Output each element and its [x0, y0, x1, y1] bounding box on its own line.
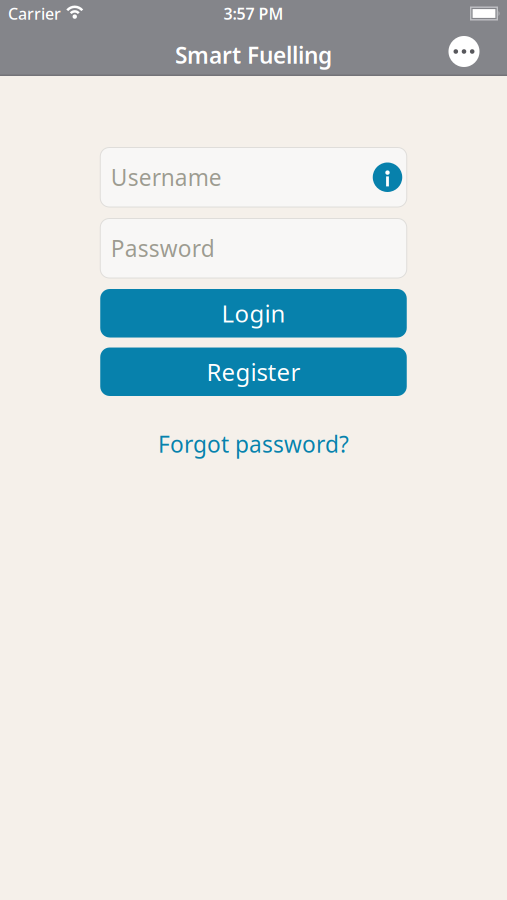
staticText: Smart Fuelling [175, 40, 332, 70]
button[interactable]: Register [100, 347, 407, 396]
button[interactable]: More options [448, 36, 479, 67]
staticText: Register [206, 356, 300, 388]
staticText: Username [111, 162, 222, 192]
textField[interactable]: Username [111, 162, 373, 192]
button[interactable]: Forgot password? [158, 429, 349, 459]
button[interactable]: Username info [373, 162, 402, 192]
staticText: Forgot password? [158, 429, 349, 459]
staticText: Login [221, 297, 285, 329]
staticText: Password [111, 233, 215, 263]
button[interactable]: Login [100, 289, 407, 337]
secureTextField[interactable]: Password [111, 233, 402, 263]
staticText: Carrier [8, 3, 61, 24]
staticText: 3:57 PM [223, 3, 283, 24]
